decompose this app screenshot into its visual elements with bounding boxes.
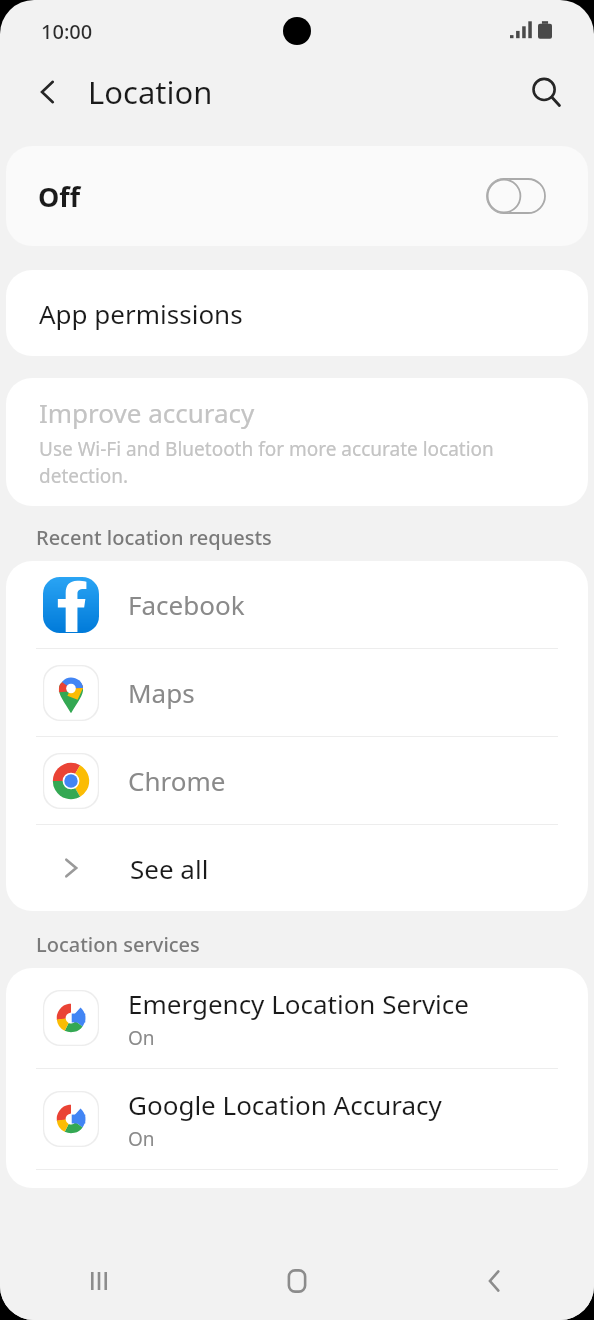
staticText: Improve accuracy (39, 395, 255, 430)
button[interactable]: App permissions (6, 270, 588, 356)
button[interactable]: Back (396, 1242, 594, 1320)
button[interactable]: Facebook (6, 561, 588, 648)
button[interactable]: Maps (6, 649, 588, 736)
button[interactable]: See all (6, 825, 588, 911)
button[interactable]: Improve accuracy (6, 378, 588, 506)
staticText: Facebook (128, 587, 245, 622)
staticText: Emergency Location Service (128, 986, 469, 1021)
staticText: On (128, 1025, 155, 1051)
button[interactable]: Back (22, 66, 74, 118)
staticText: Location services (36, 931, 200, 958)
staticText: Chrome (128, 763, 226, 798)
button[interactable]: Home (198, 1242, 396, 1320)
staticText: App permissions (39, 296, 243, 331)
staticText: Use Wi-Fi and Bluetooth for more accurat… (39, 436, 548, 489)
staticText: Maps (128, 675, 195, 710)
button[interactable]: Chrome (6, 737, 588, 824)
staticText: See all (130, 851, 209, 886)
staticText: On (128, 1126, 155, 1152)
staticText: Google Location Accuracy (128, 1087, 442, 1122)
button[interactable]: Emergency Location Service (6, 968, 588, 1068)
staticText: Recent location requests (36, 524, 272, 551)
staticText: 10:00 (41, 18, 93, 45)
button[interactable]: Off (6, 146, 588, 246)
button[interactable]: Search (520, 66, 572, 118)
staticText: Off (38, 178, 81, 215)
staticText: Location (88, 71, 213, 113)
button[interactable]: Recents (0, 1242, 198, 1320)
button[interactable]: Google Location Accuracy (6, 1069, 588, 1169)
